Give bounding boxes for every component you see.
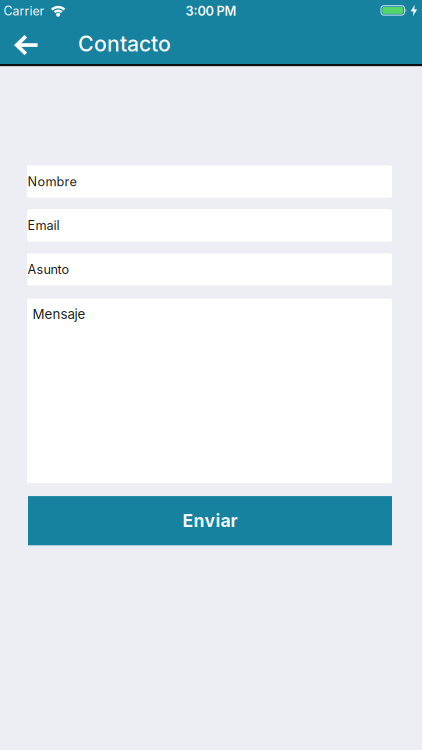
staticText: 3:00 PM xyxy=(185,3,236,19)
staticText: Carrier xyxy=(3,3,44,18)
staticText: Contacto xyxy=(78,31,171,57)
staticText: Mensaje xyxy=(32,306,85,322)
button[interactable]: Email xyxy=(27,209,392,241)
button[interactable]: Nombre xyxy=(27,165,392,198)
staticText: Asunto xyxy=(27,262,69,277)
staticText: Email xyxy=(27,218,59,233)
button[interactable]: Back xyxy=(0,31,48,55)
button[interactable]: Asunto xyxy=(27,253,392,286)
staticText: Nombre xyxy=(27,174,76,189)
button[interactable]: Enviar xyxy=(28,496,392,545)
button[interactable]: Mensaje xyxy=(27,299,392,483)
staticText: Enviar xyxy=(182,510,237,531)
